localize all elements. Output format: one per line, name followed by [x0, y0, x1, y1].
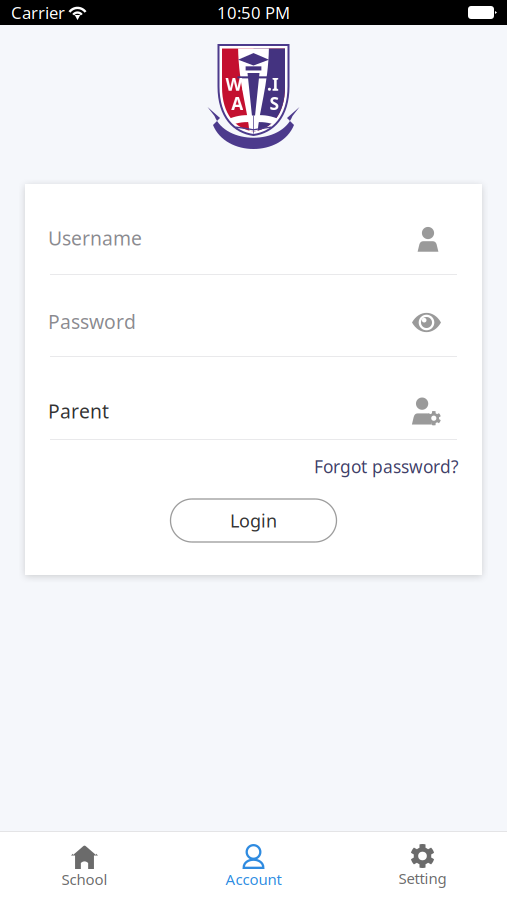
button[interactable]: Forgot password? — [306, 449, 467, 490]
button[interactable]: Password — [25, 275, 482, 356]
staticText: Username — [48, 225, 142, 251]
button[interactable]: Account — [169, 832, 338, 900]
staticText: .I — [267, 73, 279, 96]
staticText: S — [270, 92, 280, 115]
staticText: A — [231, 92, 243, 115]
staticText: W. — [225, 73, 246, 96]
button[interactable]: Parent — [25, 357, 482, 439]
staticText: 10:50 PM — [217, 1, 290, 24]
staticText: Login — [230, 508, 277, 533]
staticText: Setting — [398, 868, 446, 888]
staticText: Forgot password? — [314, 455, 459, 478]
staticText: Carrier — [11, 1, 65, 24]
staticText: Account — [225, 869, 281, 889]
button[interactable]: Username — [25, 184, 482, 274]
button[interactable]: School — [0, 832, 169, 900]
staticText: Password — [48, 308, 136, 335]
button[interactable]: Login — [170, 499, 336, 542]
staticText: School — [61, 869, 107, 889]
staticText: Parent — [48, 398, 109, 424]
button[interactable]: Setting — [338, 832, 507, 900]
